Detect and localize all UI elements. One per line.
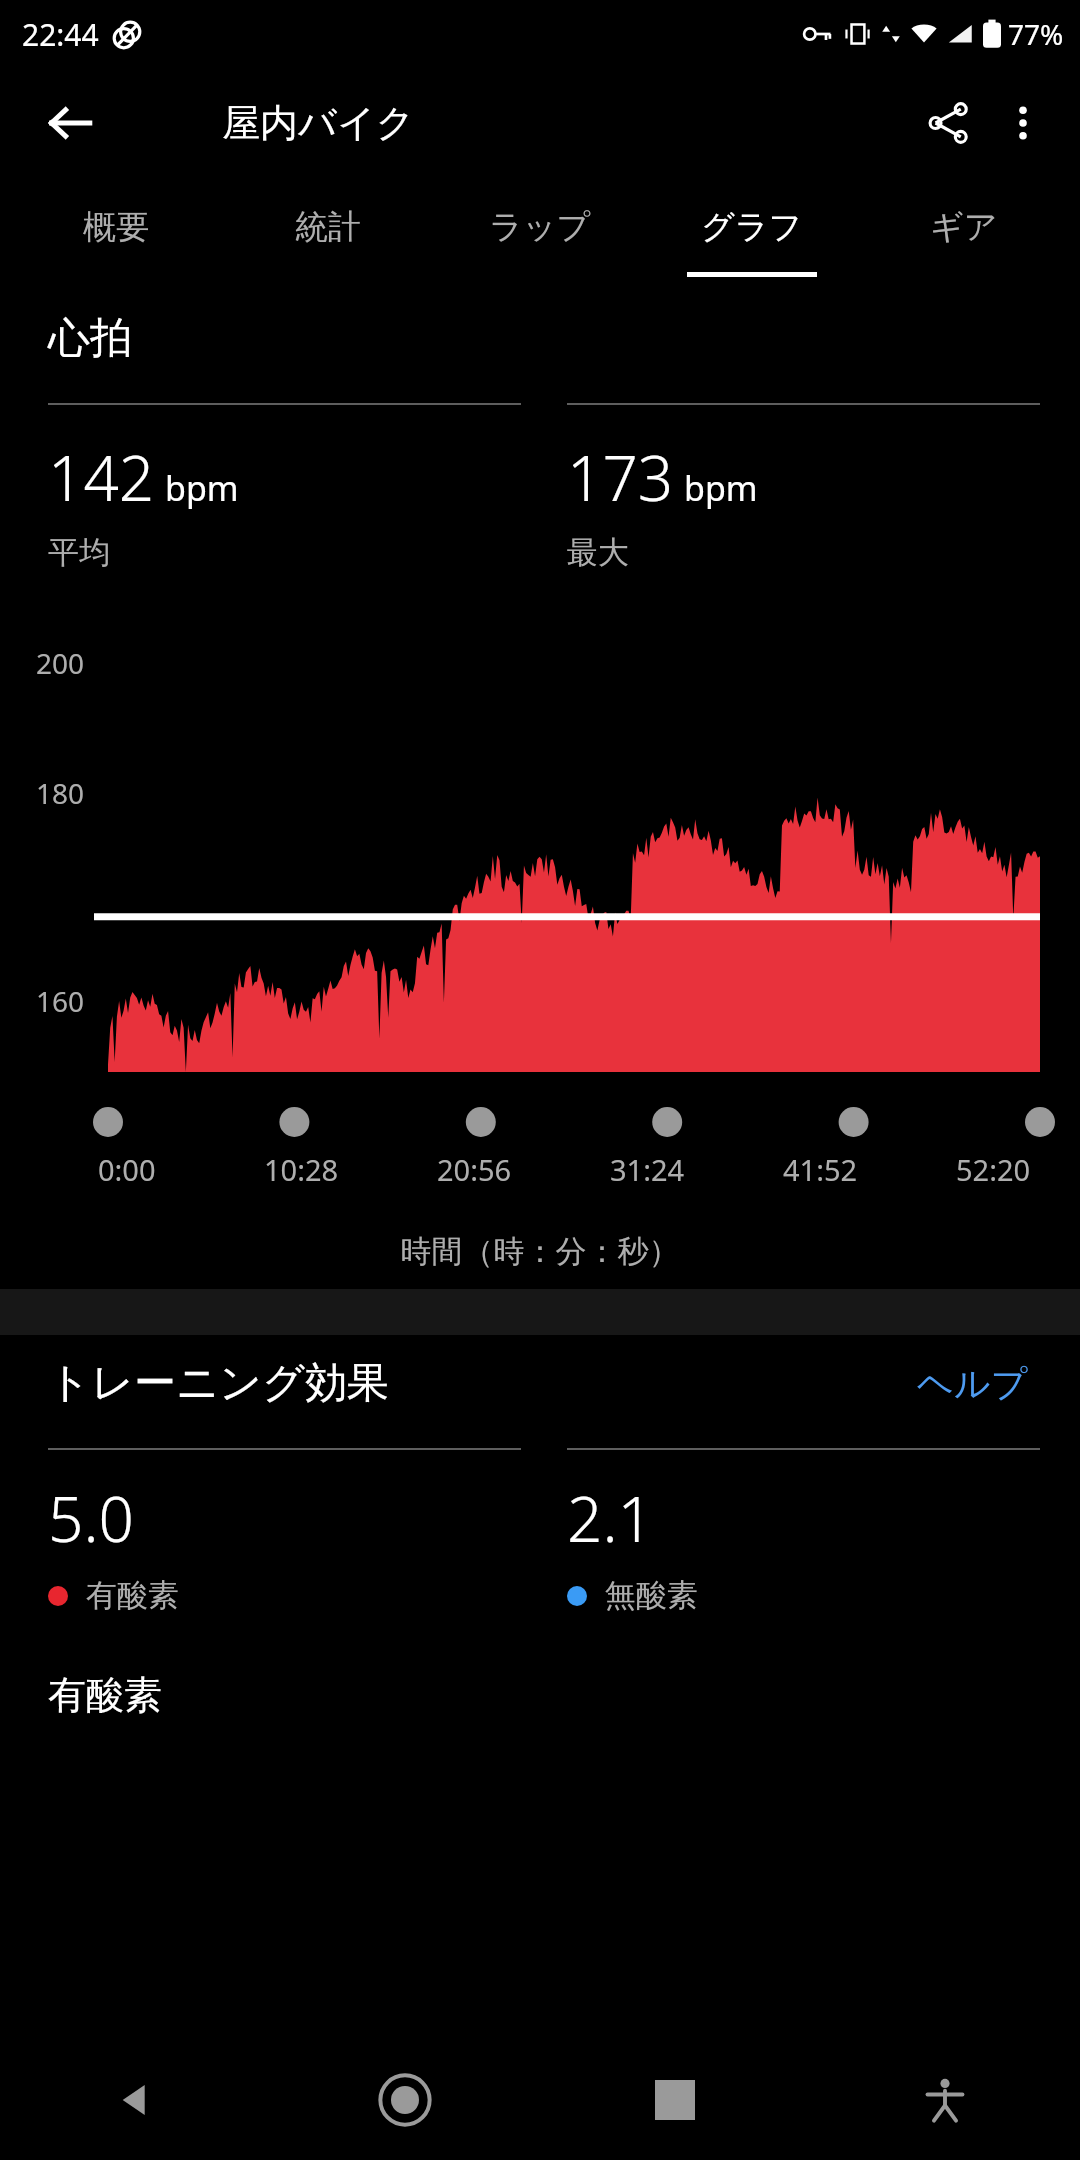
button[interactable]: Back [0, 2040, 270, 2160]
staticText: ギア [930, 206, 998, 248]
staticText: 5.0 [48, 1476, 134, 1560]
staticText: bpm [165, 465, 239, 511]
staticText: 時間（時：分：秒） [0, 1232, 1080, 1271]
button[interactable]: 統計 [222, 178, 434, 290]
staticText: 52:20 [956, 1150, 1031, 1189]
button[interactable]: Accessibility [810, 2040, 1080, 2160]
button[interactable]: ヘルプ [909, 1353, 1036, 1414]
button[interactable]: Home [270, 2040, 540, 2160]
staticText: 180 [36, 774, 85, 812]
staticText: 20:56 [437, 1150, 512, 1189]
staticText: 77% [1008, 15, 1064, 53]
staticText: ラップ [489, 206, 591, 248]
staticText: 41:52 [783, 1150, 858, 1189]
staticText: 最大 [567, 533, 629, 572]
staticText: 2.1 [567, 1476, 653, 1560]
button[interactable]: More options [986, 86, 1060, 160]
button[interactable]: Recent apps [540, 2040, 810, 2160]
staticText: 10:28 [264, 1150, 339, 1189]
staticText: 160 [36, 982, 85, 1020]
staticText: トレーニング効果 [48, 1357, 389, 1410]
staticText: 屋内バイク [222, 99, 415, 147]
staticText: 142 [48, 435, 155, 519]
staticText: 無酸素 [605, 1576, 698, 1615]
staticText: 概要 [83, 206, 149, 248]
button[interactable]: グラフ [646, 178, 858, 290]
button[interactable]: ギア [858, 178, 1070, 290]
staticText: 心拍 [48, 312, 132, 365]
staticText: グラフ [701, 206, 803, 248]
button[interactable]: Back [38, 91, 102, 155]
button[interactable]: 概要 [10, 178, 222, 290]
staticText: 200 [36, 644, 85, 682]
staticText: bpm [684, 465, 758, 511]
staticText: 173 [567, 435, 674, 519]
staticText: 有酸素 [86, 1576, 179, 1615]
button[interactable]: Share [912, 86, 986, 160]
staticText: 22:44 [22, 14, 99, 55]
staticText: 0:00 [98, 1150, 156, 1189]
staticText: 有酸素 [48, 1671, 162, 1719]
button[interactable]: ラップ [434, 178, 646, 290]
staticText: 統計 [295, 206, 361, 248]
staticText: ヘルプ [917, 1361, 1028, 1406]
staticText: 31:24 [610, 1150, 685, 1189]
staticText: 平均 [48, 533, 110, 572]
